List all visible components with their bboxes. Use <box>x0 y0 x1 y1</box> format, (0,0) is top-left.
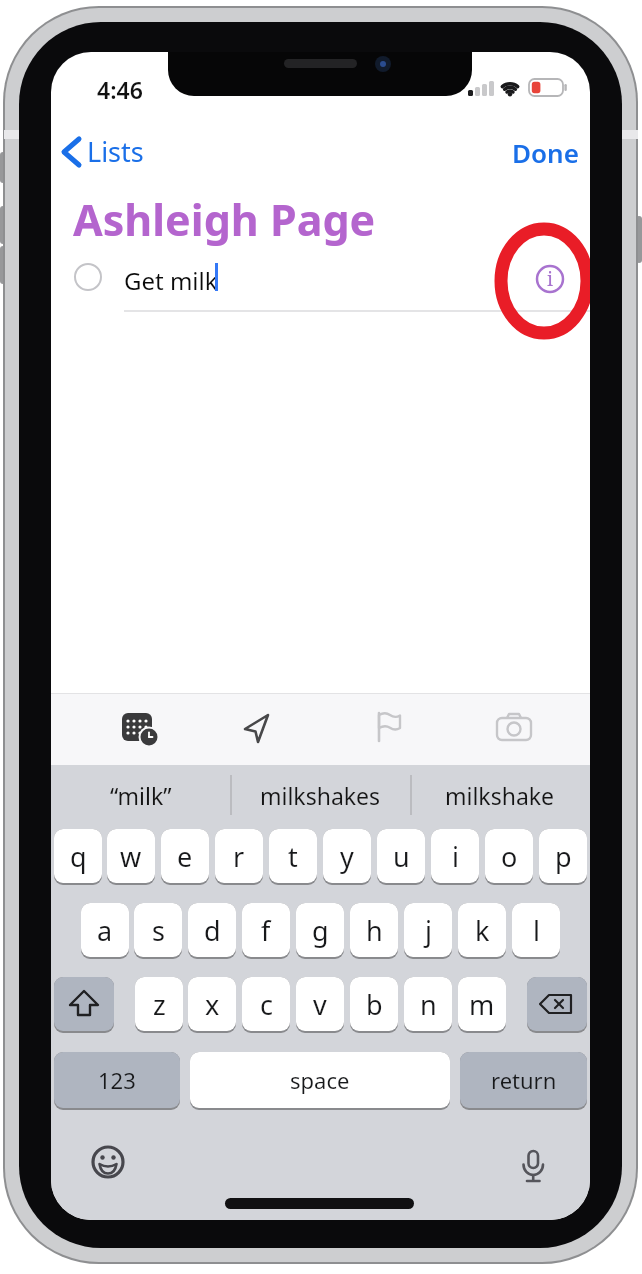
button[interactable] <box>517 1148 549 1188</box>
button[interactable]: c <box>242 977 290 1031</box>
button[interactable]: k <box>458 903 506 957</box>
staticText: g <box>312 912 329 949</box>
button[interactable]: a <box>81 903 129 957</box>
button[interactable]: v <box>296 977 344 1031</box>
staticText: b <box>366 986 383 1023</box>
staticText: e <box>177 838 193 875</box>
staticText: Get milk <box>124 264 218 297</box>
button[interactable]: o <box>485 829 533 883</box>
staticText: j <box>425 912 432 949</box>
button[interactable] <box>54 977 114 1031</box>
button[interactable] <box>495 711 533 743</box>
button[interactable] <box>527 977 587 1031</box>
staticText: milkshake <box>445 780 555 811</box>
button[interactable]: i <box>431 829 479 883</box>
staticText: y <box>340 838 354 875</box>
button[interactable]: g <box>296 903 344 957</box>
button[interactable] <box>91 1145 127 1181</box>
staticText: space <box>290 1065 350 1095</box>
staticText: t <box>288 838 298 875</box>
button[interactable]: return <box>460 1052 587 1108</box>
staticText: p <box>555 838 572 875</box>
button[interactable]: Lists <box>87 133 144 170</box>
button[interactable]: m <box>458 977 506 1031</box>
button[interactable]: p <box>539 829 587 883</box>
button[interactable] <box>74 263 102 291</box>
button[interactable]: r <box>215 829 263 883</box>
staticText: i <box>452 838 459 875</box>
button[interactable]: “milk” <box>51 765 231 825</box>
staticText: c <box>260 986 273 1023</box>
staticText: n <box>420 986 437 1023</box>
staticText: x <box>205 986 220 1023</box>
staticText: z <box>153 986 166 1023</box>
button[interactable] <box>371 709 405 745</box>
button[interactable]: l <box>512 903 560 957</box>
staticText: l <box>533 912 540 949</box>
staticText: return <box>491 1065 557 1095</box>
button[interactable]: n <box>404 977 452 1031</box>
button[interactable] <box>239 709 275 745</box>
button[interactable]: space <box>190 1052 450 1108</box>
staticText: i <box>547 266 554 292</box>
button[interactable]: u <box>377 829 425 883</box>
button[interactable]: milkshake <box>410 765 590 825</box>
staticText: s <box>152 912 165 949</box>
button[interactable]: 123 <box>54 1052 180 1108</box>
button[interactable]: Done <box>512 135 579 170</box>
staticText: “milk” <box>110 780 172 811</box>
staticText: q <box>70 838 87 875</box>
staticText: d <box>204 912 221 949</box>
staticText: k <box>475 912 490 949</box>
button[interactable]: b <box>350 977 398 1031</box>
button[interactable]: milkshakes <box>231 765 410 825</box>
button[interactable]: q <box>54 829 102 883</box>
staticText: 123 <box>98 1065 136 1095</box>
button[interactable]: w <box>107 829 155 883</box>
button[interactable]: d <box>188 903 236 957</box>
staticText: milkshakes <box>260 780 381 811</box>
staticText: m <box>469 986 495 1023</box>
button[interactable]: h <box>350 903 398 957</box>
button[interactable] <box>60 138 84 168</box>
button[interactable]: t <box>269 829 317 883</box>
button[interactable]: z <box>135 977 183 1031</box>
button[interactable]: y <box>323 829 371 883</box>
staticText: h <box>366 912 383 949</box>
button[interactable]: s <box>134 903 182 957</box>
staticText: w <box>120 838 142 875</box>
staticText: o <box>501 838 518 875</box>
staticText: Ashleigh Page <box>73 190 376 249</box>
staticText: v <box>313 986 327 1023</box>
staticText: u <box>393 838 410 875</box>
button[interactable]: e <box>161 829 209 883</box>
staticText: r <box>233 838 245 875</box>
button[interactable]: x <box>188 977 236 1031</box>
button[interactable] <box>119 708 159 748</box>
staticText: a <box>97 912 113 949</box>
button[interactable]: j <box>404 903 452 957</box>
staticText: 4:46 <box>97 74 143 105</box>
staticText: f <box>261 912 271 949</box>
button[interactable]: i <box>535 264 565 294</box>
button[interactable]: f <box>242 903 290 957</box>
